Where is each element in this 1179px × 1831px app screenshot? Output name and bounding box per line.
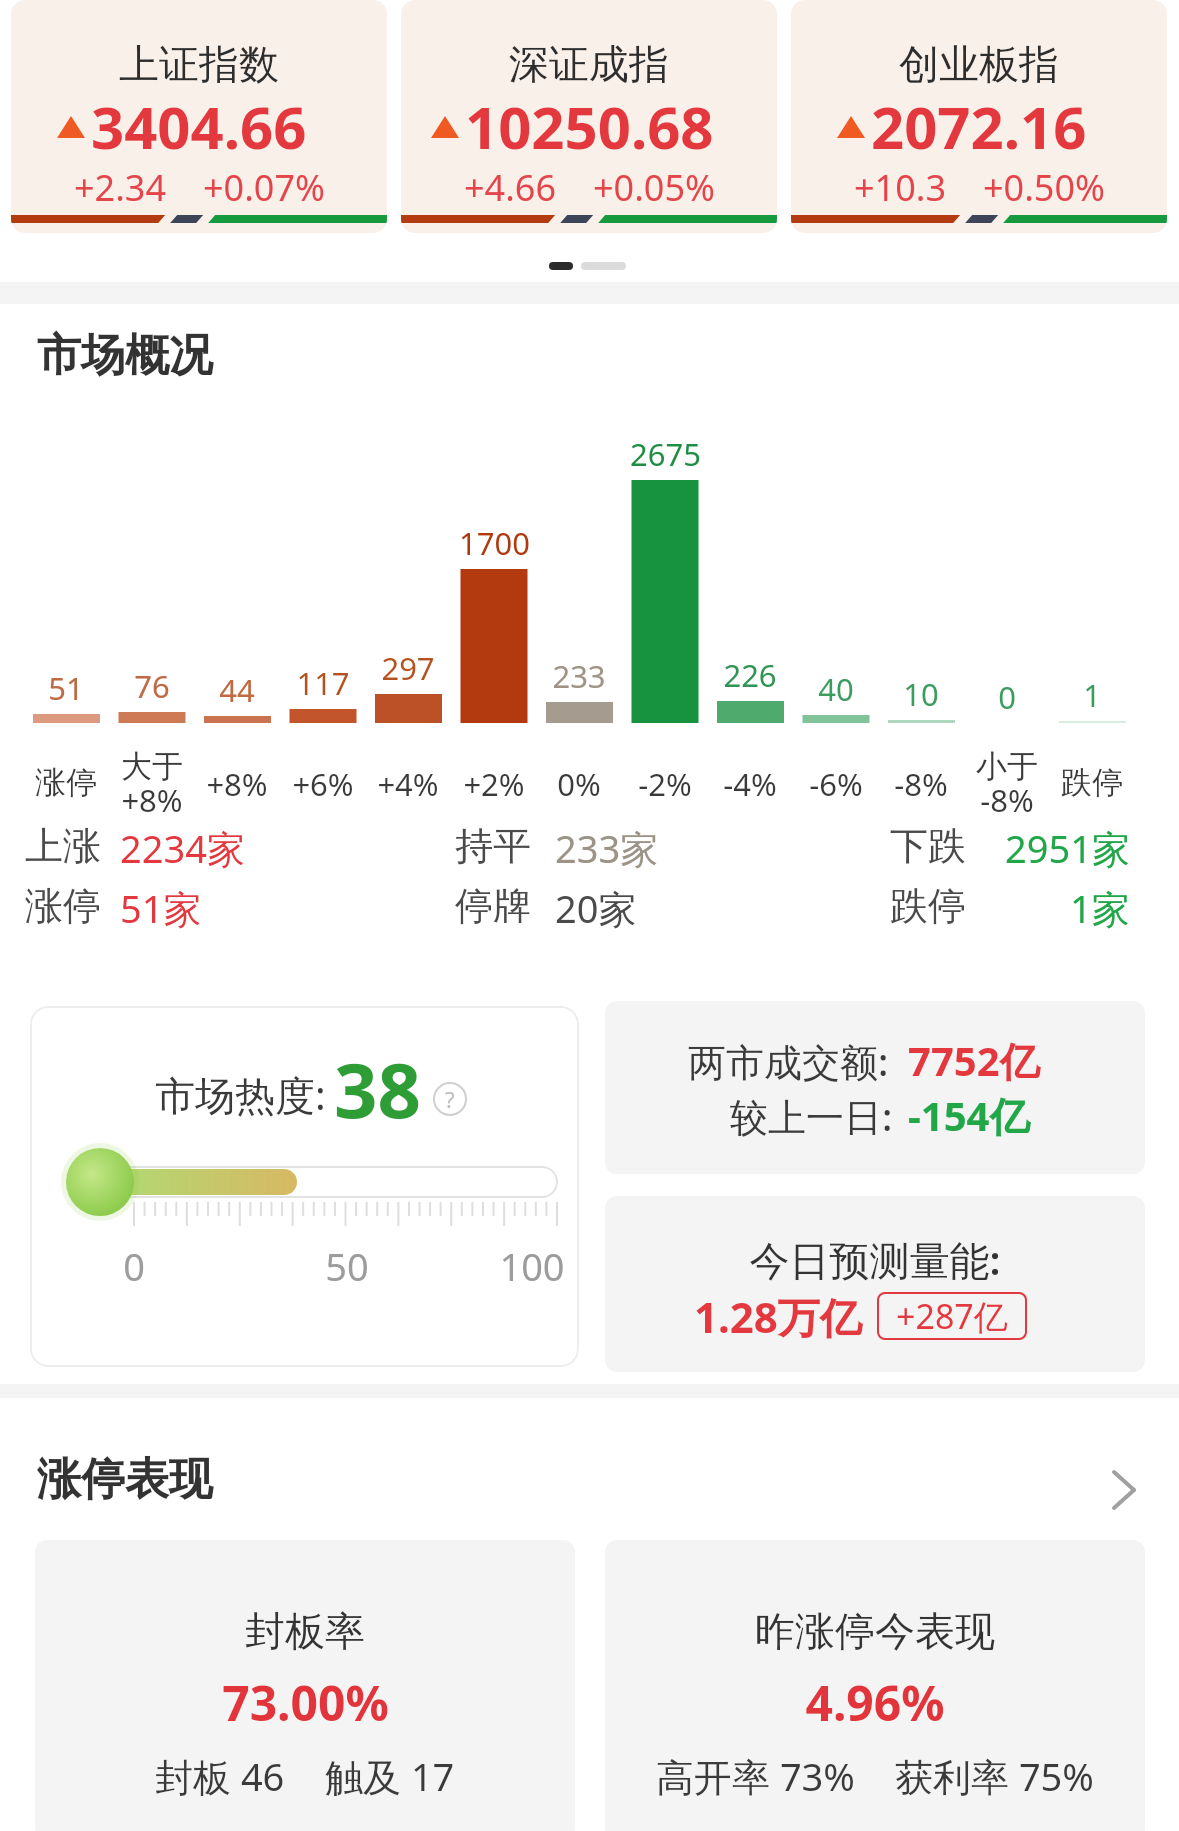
staticText: 封板率: [245, 1606, 365, 1656]
staticText: 0: [123, 1240, 145, 1292]
staticText: 停牌: [455, 882, 531, 930]
staticText: 3404.66: [91, 87, 307, 166]
button[interactable]: 创业板指: [791, 0, 1167, 233]
staticText: +8%: [206, 763, 268, 805]
staticText: +0.50%: [983, 163, 1105, 212]
staticText: 今日预测量能:: [749, 1232, 1001, 1287]
staticText: 1家: [1070, 882, 1130, 934]
staticText: 20家: [555, 882, 637, 934]
staticText: 50: [325, 1240, 369, 1292]
button[interactable]: [605, 1001, 1145, 1174]
staticText: -154亿: [908, 1088, 1030, 1143]
staticText: 233: [552, 655, 606, 697]
staticText: +0.05%: [593, 163, 715, 212]
staticText: +0.07%: [203, 163, 325, 212]
staticText: 4.96%: [805, 1670, 945, 1735]
staticText: 上涨: [25, 822, 101, 870]
staticText: 44: [219, 669, 255, 711]
staticText: 38: [334, 1037, 421, 1141]
staticText: 下跌: [890, 822, 966, 870]
staticText: 233家: [555, 822, 659, 874]
staticText: 10: [903, 673, 939, 715]
staticText: ?: [445, 1084, 455, 1114]
staticText: 1700: [459, 522, 530, 564]
staticText: 73.00%: [222, 1670, 389, 1735]
staticText: 持平: [455, 822, 531, 870]
staticText: 涨停: [35, 763, 97, 802]
staticText: 0: [998, 676, 1016, 718]
staticText: 2234家: [120, 822, 245, 874]
staticText: 昨涨停今表现: [755, 1606, 995, 1656]
staticText: -4%: [723, 763, 777, 805]
staticText: 两市成交额:: [688, 1035, 889, 1087]
staticText: 2072.16: [871, 87, 1087, 166]
staticText: 涨停: [25, 882, 101, 930]
staticText: 大于 +8%: [121, 747, 183, 821]
staticText: 226: [723, 654, 777, 696]
staticText: 触及 17: [325, 1750, 455, 1802]
staticText: 10250.68: [465, 87, 714, 166]
staticText: 上证指数: [119, 39, 279, 89]
button[interactable]: 上证指数: [11, 0, 387, 233]
staticText: 2675: [630, 433, 701, 475]
staticText: 跌停: [1061, 763, 1123, 802]
staticText: +4.66: [464, 163, 557, 212]
staticText: 涨停表现: [37, 1452, 213, 1507]
staticText: 较上一日:: [730, 1090, 893, 1142]
staticText: 高开率 73%: [656, 1750, 855, 1802]
staticText: 市场热度:: [155, 1067, 326, 1122]
staticText: 获利率 75%: [895, 1750, 1094, 1802]
staticText: 深证成指: [509, 39, 669, 89]
staticText: +2.34: [74, 163, 167, 212]
staticText: +4%: [377, 763, 439, 805]
button[interactable]: [605, 1196, 1145, 1372]
staticText: +10.3: [854, 163, 947, 212]
staticText: 117: [296, 662, 350, 704]
staticText: 1.28万亿: [694, 1288, 862, 1345]
staticText: 创业板指: [899, 39, 1059, 89]
staticText: -2%: [638, 763, 692, 805]
button[interactable]: 深证成指: [401, 0, 777, 233]
button[interactable]: [30, 1006, 579, 1367]
staticText: 2951家: [1005, 822, 1130, 874]
staticText: 市场概况: [37, 328, 213, 383]
staticText: 0%: [557, 763, 601, 805]
staticText: 跌停: [890, 882, 966, 930]
button[interactable]: [605, 1540, 1145, 1831]
staticText: 小于 -8%: [976, 747, 1038, 821]
button[interactable]: [35, 1540, 575, 1831]
staticText: +6%: [292, 763, 354, 805]
staticText: 7752亿: [908, 1033, 1040, 1088]
staticText: 51: [48, 667, 84, 709]
staticText: +2%: [463, 763, 525, 805]
staticText: -6%: [809, 763, 863, 805]
staticText: +287亿: [896, 1293, 1008, 1339]
staticText: 51家: [120, 882, 202, 934]
staticText: 76: [134, 665, 170, 707]
button[interactable]: +287亿: [877, 1292, 1027, 1340]
staticText: 100: [499, 1240, 565, 1292]
staticText: 40: [818, 668, 854, 710]
staticText: 封板 46: [155, 1750, 285, 1802]
staticText: 1: [1083, 674, 1101, 716]
staticText: -8%: [894, 763, 948, 805]
button[interactable]: [0, 1440, 1179, 1520]
staticText: 297: [381, 647, 435, 689]
